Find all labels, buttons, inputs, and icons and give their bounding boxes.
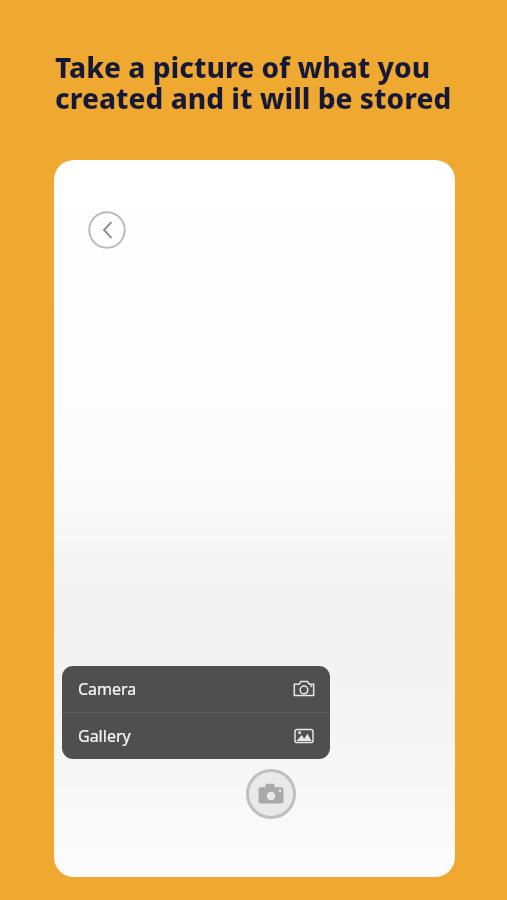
staticText: Camera — [78, 678, 137, 700]
button[interactable]: Take photo — [245, 768, 297, 820]
button[interactable]: Back — [88, 211, 126, 249]
staticText: Take a picture of what you created and i… — [55, 48, 467, 118]
button[interactable]: Gallery — [62, 713, 330, 759]
staticText: Gallery — [78, 725, 131, 747]
button[interactable]: Camera — [62, 666, 330, 712]
